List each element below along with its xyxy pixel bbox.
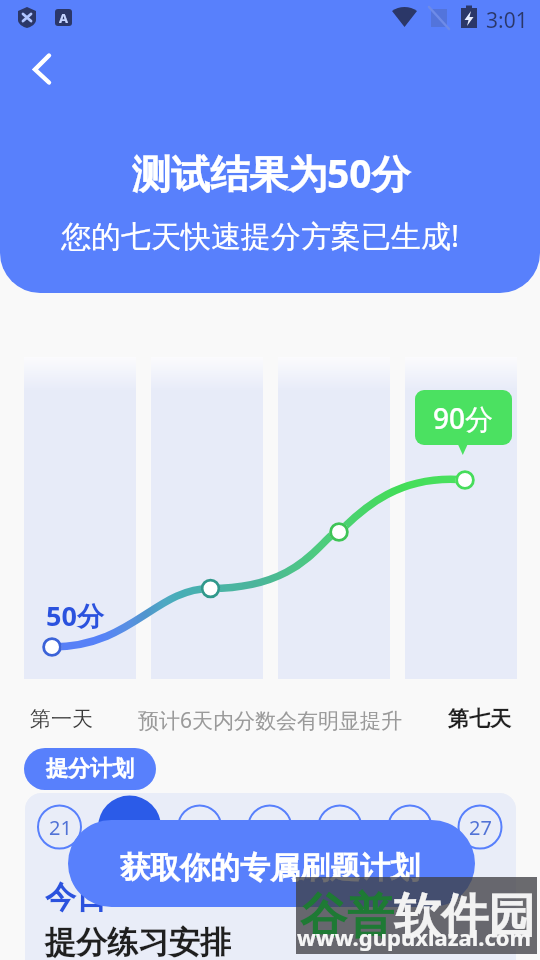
staticText: 获取你的专属刷题计划 bbox=[120, 849, 420, 887]
staticText: 谷普 bbox=[300, 887, 394, 946]
button[interactable]: Back bbox=[18, 46, 66, 94]
staticText: 24 bbox=[259, 814, 282, 841]
staticText: 软件园 bbox=[394, 887, 535, 946]
staticText: 第一天 bbox=[30, 706, 93, 732]
button[interactable]: 提分计划 bbox=[24, 748, 156, 790]
staticText: A bbox=[59, 9, 68, 26]
staticText: 90分 bbox=[433, 399, 494, 437]
staticText: 50分 bbox=[46, 597, 104, 634]
staticText: 测试结果为50分 bbox=[132, 146, 411, 199]
staticText: www.gupuxlazal.com bbox=[297, 922, 531, 952]
staticText: 22 bbox=[119, 814, 142, 841]
staticText: 3:01 bbox=[486, 6, 528, 35]
staticText: 提分练习安排 bbox=[45, 923, 231, 960]
staticText: 21 bbox=[49, 814, 72, 841]
staticText: 23 bbox=[189, 814, 212, 841]
staticText: 25 bbox=[329, 814, 352, 841]
staticText: 27 bbox=[469, 814, 492, 841]
staticText: 第七天 bbox=[448, 706, 511, 732]
staticText: 26 bbox=[399, 814, 422, 841]
staticText: 您的七天快速提分方案已生成! bbox=[61, 215, 460, 256]
staticText: 预计6天内分数会有明显提升 bbox=[138, 706, 403, 735]
staticText: 提分计划 bbox=[46, 755, 134, 783]
staticText: 今日 bbox=[45, 878, 107, 917]
button[interactable] bbox=[68, 820, 475, 907]
